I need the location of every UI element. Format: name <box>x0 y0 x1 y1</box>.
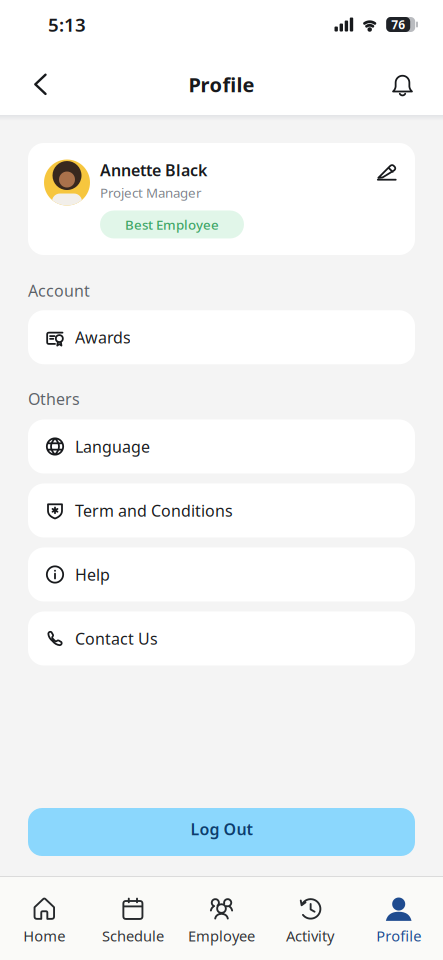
button[interactable]: Activity <box>266 896 354 945</box>
staticText: Annette Black <box>100 159 207 181</box>
staticText: 76 <box>391 16 405 32</box>
button[interactable]: Contact Us <box>28 611 415 665</box>
button[interactable]: Profile <box>354 896 443 945</box>
button[interactable]: Employee <box>177 896 266 945</box>
button[interactable]: Help <box>28 547 415 601</box>
button[interactable]: Edit profile <box>376 159 398 181</box>
staticText: Profile <box>188 71 254 98</box>
staticText: Log Out <box>190 818 252 840</box>
staticText: Term and Conditions <box>75 500 233 521</box>
button[interactable]: Back <box>29 73 52 96</box>
staticText: Others <box>28 388 80 409</box>
staticText: Schedule <box>102 926 164 945</box>
staticText: Contact Us <box>75 628 158 649</box>
button[interactable]: Awards <box>28 310 415 364</box>
button[interactable]: Home <box>0 896 89 945</box>
staticText: Language <box>75 436 150 457</box>
staticText: Best Employee <box>125 216 219 233</box>
staticText: Awards <box>75 327 131 348</box>
staticText: Activity <box>286 926 334 945</box>
staticText: Project Manager <box>100 184 202 201</box>
staticText: Help <box>75 564 110 585</box>
staticText: 5:13 <box>48 12 86 37</box>
button[interactable]: Notifications <box>389 71 416 98</box>
button[interactable]: Term and Conditions <box>28 483 415 537</box>
staticText: Account <box>28 280 90 301</box>
staticText: Home <box>23 926 65 945</box>
staticText: Employee <box>188 926 255 945</box>
staticText: Profile <box>376 926 421 945</box>
button[interactable]: Language <box>28 419 415 473</box>
button[interactable]: Schedule <box>89 896 177 945</box>
button[interactable]: Log Out <box>28 808 415 856</box>
